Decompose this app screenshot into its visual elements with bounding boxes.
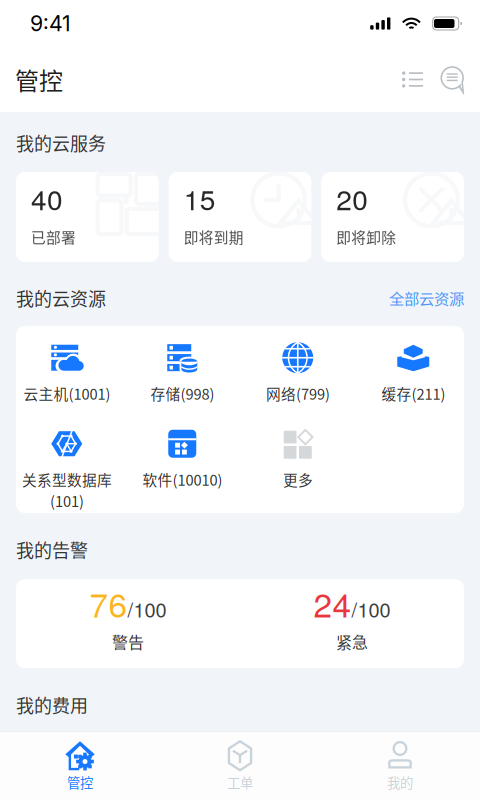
staticText: 我的云服务 <box>16 130 106 156</box>
staticText: 15 <box>184 178 216 218</box>
staticText: 76 <box>89 579 127 627</box>
button[interactable]: 管控 <box>0 731 160 800</box>
button[interactable]: 24 <box>240 579 464 668</box>
staticText: /100 <box>127 594 166 623</box>
button[interactable]: 存储(998) <box>124 344 240 400</box>
staticText: 网络(799) <box>266 383 330 404</box>
button[interactable]: 软件(10010) <box>124 430 240 496</box>
staticText: 警告 <box>112 630 144 653</box>
staticText: 已部署 <box>31 226 76 247</box>
button[interactable]: 76 <box>16 579 240 668</box>
staticText: 我的告警 <box>16 536 88 562</box>
button[interactable]: 网络(799) <box>240 344 355 400</box>
button[interactable]: 我的 <box>320 731 480 800</box>
staticText: 40 <box>31 178 63 218</box>
staticText: 20 <box>336 178 368 218</box>
staticText: 工单 <box>227 772 253 792</box>
staticText: 管控 <box>15 62 63 97</box>
staticText: 紧急 <box>336 630 368 653</box>
button[interactable]: 20 <box>321 172 464 262</box>
staticText: 更多 <box>283 469 313 490</box>
staticText: 我的费用 <box>16 692 88 718</box>
button[interactable]: 全部云资源 <box>389 287 464 309</box>
staticText: 管控 <box>67 772 93 792</box>
staticText: 全部云资源 <box>389 287 464 309</box>
staticText: 我的 <box>387 772 413 792</box>
staticText: 云主机(1001) <box>23 383 110 404</box>
button[interactable]: 15 <box>169 172 311 262</box>
staticText: 关系型数据库(101) <box>22 469 112 511</box>
staticText: 我的云资源 <box>16 285 106 311</box>
button[interactable]: 云主机(1001) <box>9 344 124 400</box>
button[interactable]: 更多 <box>240 430 355 496</box>
button[interactable]: 列表 <box>393 61 432 97</box>
staticText: 即将卸除 <box>336 226 396 247</box>
staticText: 软件(10010) <box>142 469 222 490</box>
staticText: 即将到期 <box>184 226 244 247</box>
button[interactable]: 40 <box>16 172 159 262</box>
staticText: 9:41 <box>30 11 71 36</box>
button[interactable]: 关系型数据库(101) <box>9 430 124 496</box>
button[interactable]: 缓存(211) <box>355 344 471 400</box>
button[interactable]: 消息 <box>432 58 474 100</box>
staticText: 存储(998) <box>150 383 214 404</box>
staticText: 24 <box>313 579 351 627</box>
staticText: /100 <box>351 594 390 623</box>
staticText: 缓存(211) <box>381 383 445 404</box>
button[interactable]: 工单 <box>160 731 320 800</box>
